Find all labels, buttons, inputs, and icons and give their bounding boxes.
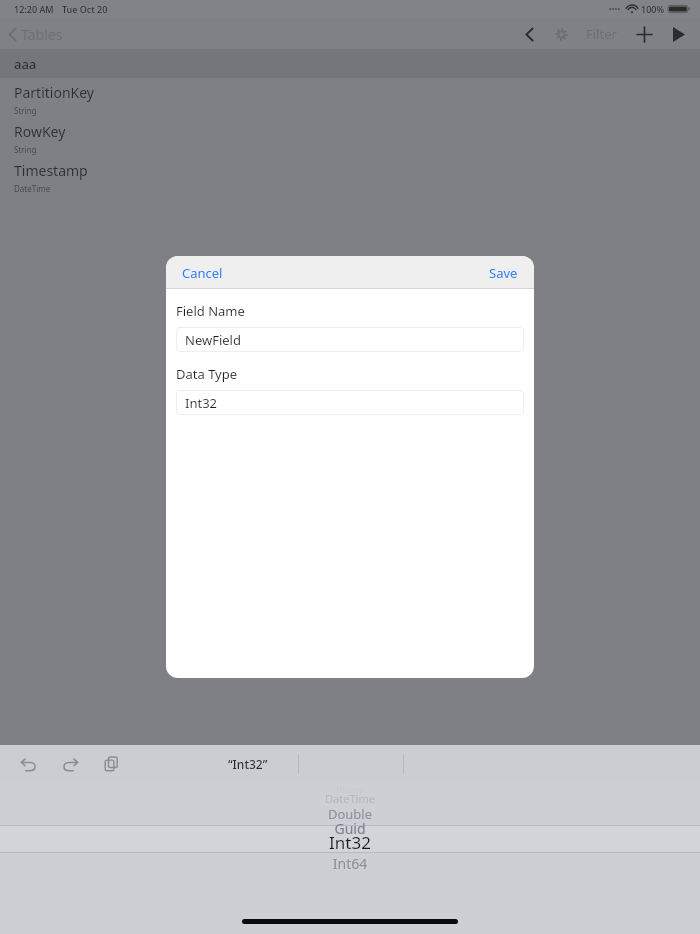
button[interactable]: Cancel [180,260,225,286]
staticText: “Int32” [228,756,268,772]
staticText: Tables [21,25,63,44]
staticText: Filter [586,25,617,43]
staticText: Int32 [185,394,218,412]
button[interactable]: Add [631,22,658,47]
staticText: String [14,105,37,116]
button[interactable]: NewField [176,327,524,352]
button[interactable]: Back [518,22,541,47]
button[interactable]: Undo [14,751,43,778]
staticText: Tue Oct 20 [62,3,108,15]
button[interactable]: Paste [98,750,125,778]
staticText: Int64 [0,854,700,873]
staticText: NewField [185,331,241,349]
staticText: RowKey [14,122,66,141]
button[interactable]: RowKey [0,117,700,156]
staticText: Double [0,805,700,823]
staticText: 100% [641,3,665,15]
staticText: Cancel [182,264,223,282]
button[interactable]: PartitionKey [0,78,700,117]
staticText: Guid [0,819,700,838]
staticText: PartitionKey [14,83,94,102]
staticText: Data Type [176,365,238,383]
button[interactable]: Filter [582,20,621,48]
button[interactable]: Int32 [176,390,524,415]
staticText: Field Name [176,302,245,320]
staticText: Int32 [0,831,700,854]
button[interactable]: Redo [56,751,85,778]
button[interactable]: “Int32” [222,751,274,777]
button[interactable]: Save [487,260,520,286]
staticText: Timestamp [14,161,88,180]
staticText: 12:20 AM [14,3,54,15]
button[interactable]: Timestamp [0,156,700,195]
staticText: Save [489,264,518,282]
button[interactable]: Settings [549,23,574,46]
staticText: aaa [14,55,37,73]
staticText: String [14,144,37,155]
button[interactable]: Tables [0,21,71,48]
button[interactable]: Run [668,23,690,46]
staticText: DateTime [14,183,51,194]
